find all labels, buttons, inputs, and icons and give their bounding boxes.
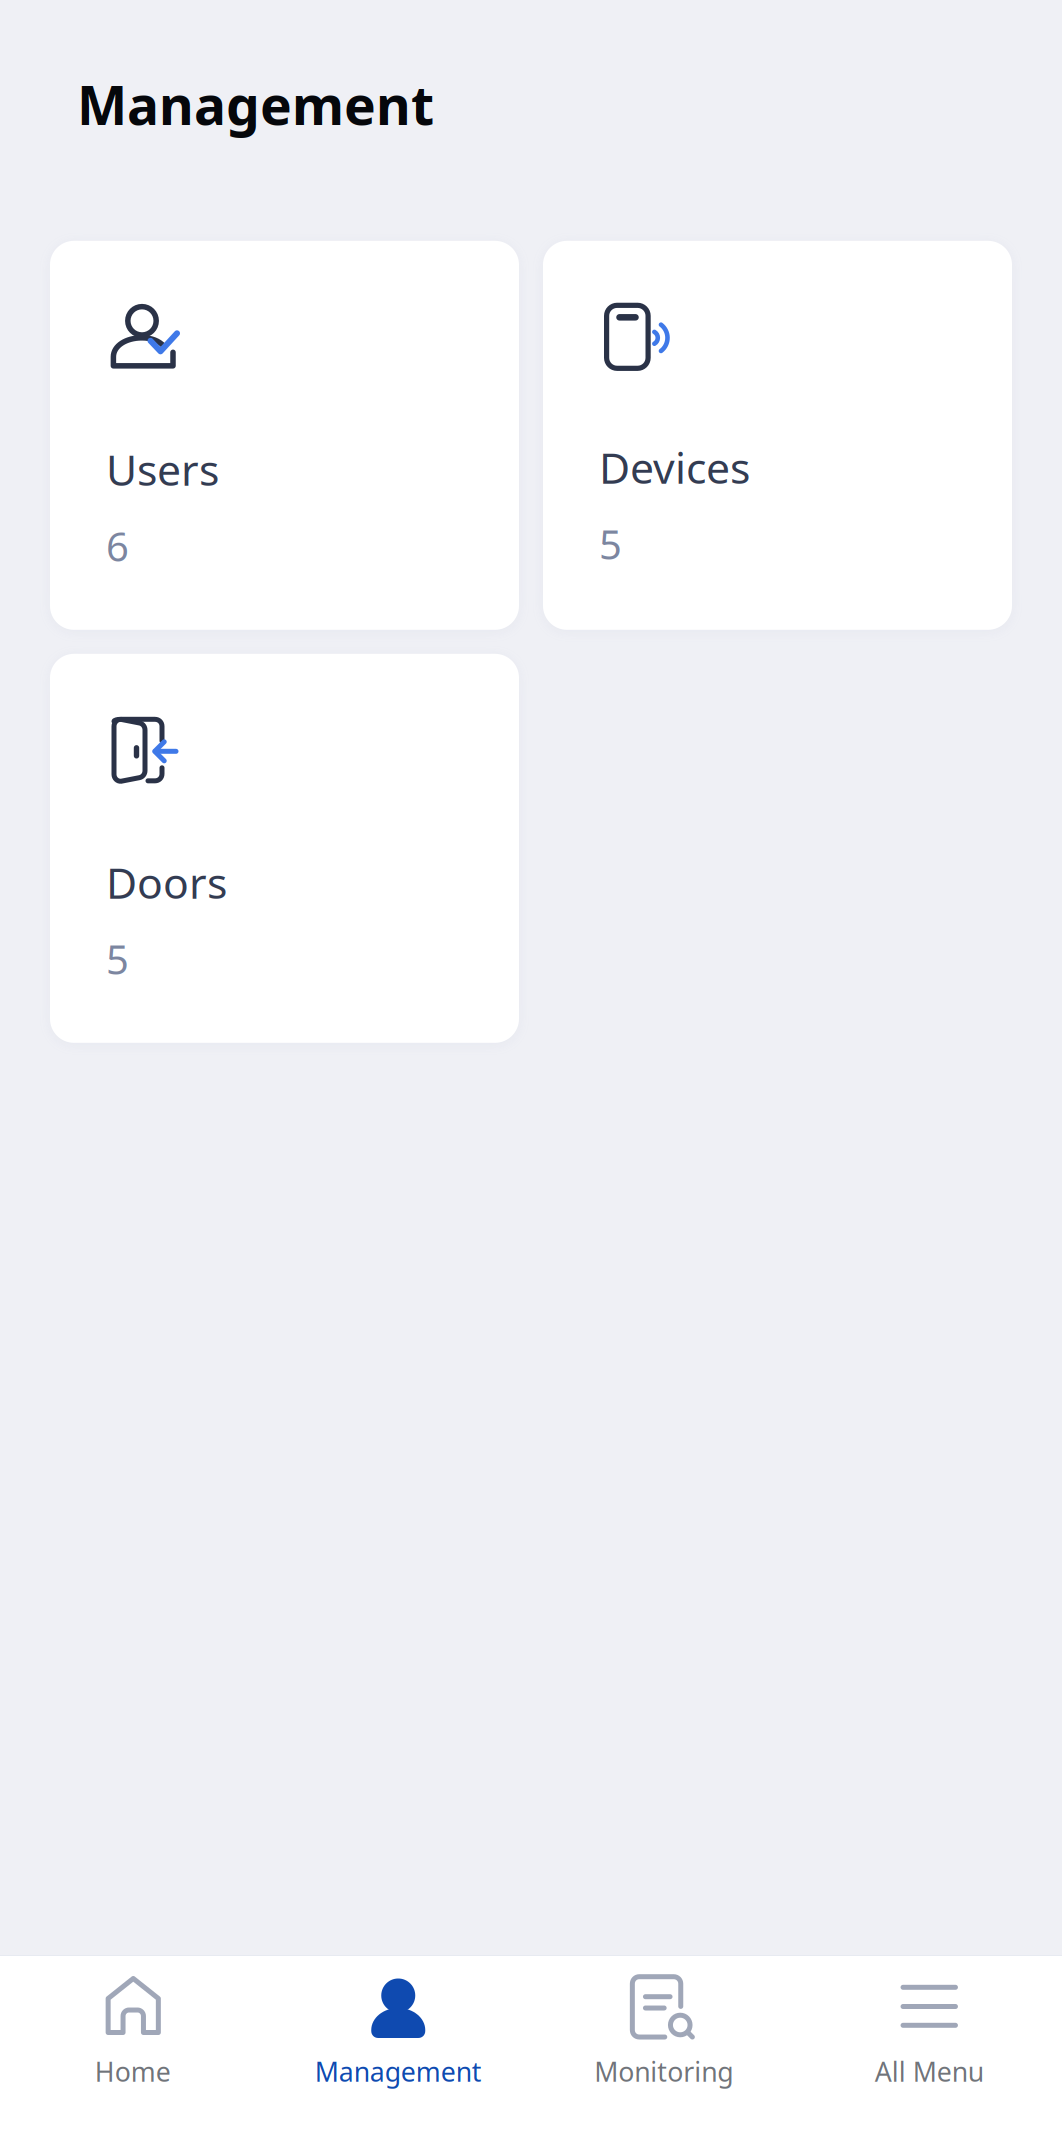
staticText: Users <box>106 441 219 497</box>
staticText: Monitoring <box>594 2054 733 2089</box>
button[interactable]: Home <box>0 1955 265 2135</box>
staticText: 5 <box>106 932 129 986</box>
staticText: Management <box>77 69 434 140</box>
button[interactable]: All Menu <box>796 1955 1062 2135</box>
staticText: Doors <box>106 854 227 910</box>
staticText: Devices <box>599 439 750 495</box>
staticText: Home <box>95 2054 171 2089</box>
button[interactable]: Doors <box>50 654 519 1043</box>
staticText: Management <box>315 2054 482 2089</box>
staticText: All Menu <box>875 2054 984 2089</box>
button[interactable]: Devices <box>543 241 1012 630</box>
staticText: 5 <box>599 517 622 571</box>
button[interactable]: Monitoring <box>531 1955 796 2135</box>
button[interactable]: Management <box>265 1955 531 2135</box>
staticText: 6 <box>106 519 129 573</box>
button[interactable]: Users <box>50 241 519 630</box>
